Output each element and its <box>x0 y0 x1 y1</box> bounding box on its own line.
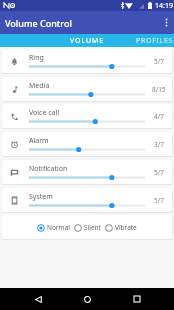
staticText: 14:19 <box>155 1 173 11</box>
staticText: Ring <box>29 53 44 63</box>
button[interactable]: Notification <box>2 160 172 184</box>
staticText: Notification <box>29 164 68 174</box>
button[interactable]: System <box>2 188 172 212</box>
button[interactable]: Voice call <box>2 104 172 128</box>
staticText: 5/7 <box>154 196 164 205</box>
button[interactable]: More options <box>158 11 174 34</box>
staticText: Silent <box>84 223 101 232</box>
staticText: VOLUME <box>70 36 104 46</box>
staticText: PROFILES <box>136 36 174 46</box>
button[interactable]: Normal <box>37 220 70 235</box>
button[interactable]: Recents <box>125 288 149 310</box>
button[interactable]: Home <box>75 288 99 310</box>
button[interactable]: Silent <box>74 220 101 235</box>
staticText: 5/7 <box>154 57 164 66</box>
button[interactable]: PROFILES <box>128 34 174 47</box>
button[interactable]: Alarm <box>2 132 172 156</box>
staticText: Vibrate <box>115 223 137 232</box>
button[interactable]: Vibrate <box>105 220 137 235</box>
button[interactable]: Back <box>26 288 50 310</box>
staticText: System <box>29 192 53 202</box>
staticText: 3/7 <box>154 140 164 149</box>
staticText: 4/7 <box>154 112 164 121</box>
staticText: Volume Control <box>5 17 72 29</box>
staticText: Media <box>29 81 50 91</box>
button[interactable]: VOLUME <box>62 34 112 47</box>
button[interactable]: Media <box>2 77 172 101</box>
staticText: Alarm <box>29 136 49 146</box>
staticText: 5/7 <box>154 168 164 177</box>
button[interactable]: Ring <box>2 49 172 73</box>
staticText: Normal <box>47 223 70 232</box>
staticText: Voice call <box>29 108 60 118</box>
staticText: 8/15 <box>152 85 166 94</box>
